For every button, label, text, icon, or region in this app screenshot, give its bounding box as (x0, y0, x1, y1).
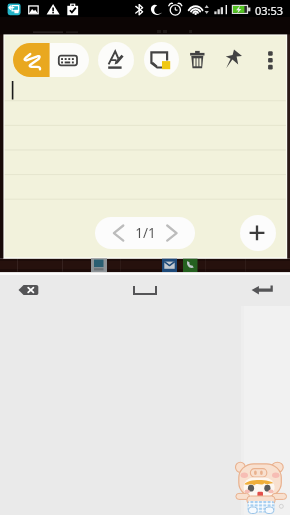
button[interactable]: Backspace (10, 279, 48, 302)
button[interactable]: Pin note (224, 48, 244, 72)
button[interactable]: Pen style (98, 42, 134, 78)
staticText: 1/1 (135, 224, 156, 242)
button[interactable]: 1/1 (95, 217, 195, 249)
button[interactable]: Add page (240, 215, 276, 251)
button[interactable]: Delete (187, 46, 209, 74)
button[interactable]: Space (124, 279, 166, 302)
staticText: 03:53 (255, 3, 284, 18)
button[interactable]: More options (263, 48, 278, 72)
button[interactable]: Enter (245, 277, 281, 302)
button[interactable] (13, 43, 89, 77)
button[interactable]: Note colour (144, 42, 179, 77)
